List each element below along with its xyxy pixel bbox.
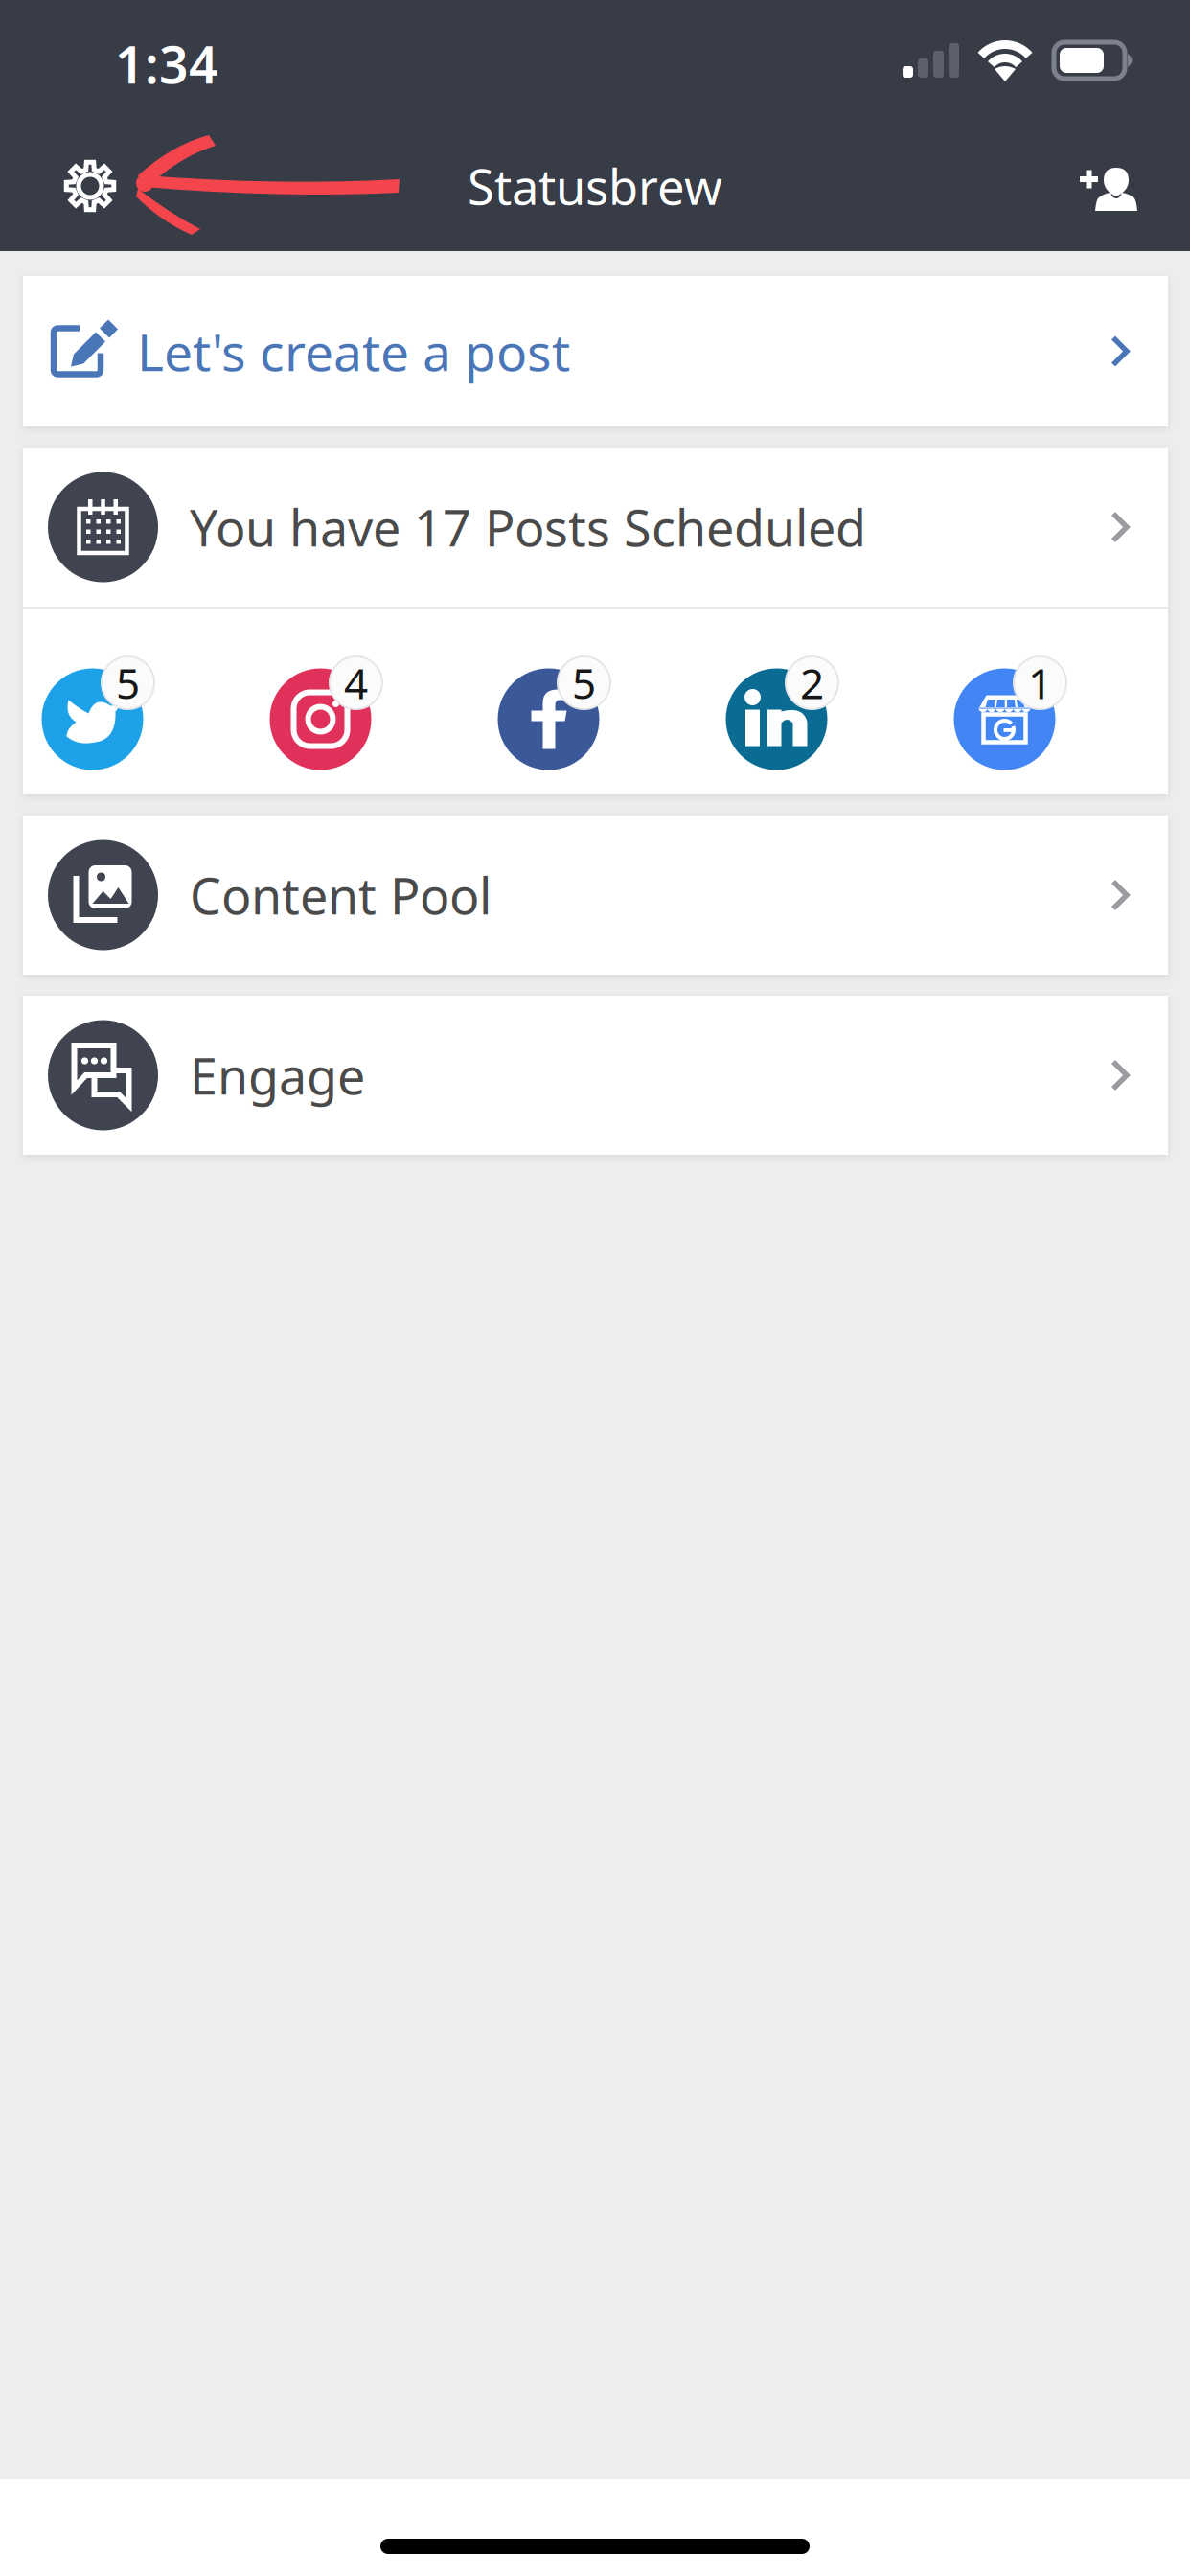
button[interactable]: 1 posts — [954, 632, 1063, 770]
staticText: Content Pool — [190, 862, 492, 928]
staticText: You have 17 Posts Scheduled — [190, 494, 866, 560]
button[interactable]: 2 posts — [726, 632, 835, 770]
button[interactable]: Engage — [23, 996, 1168, 1155]
staticText: Statusbrew — [468, 154, 722, 218]
staticText: 5 — [116, 655, 140, 711]
button[interactable]: Let's create a post — [23, 276, 1168, 426]
staticText: 2 — [800, 655, 824, 711]
staticText: 5 — [572, 655, 596, 711]
button[interactable]: Settings — [31, 121, 149, 251]
staticText: 1 — [1028, 655, 1052, 711]
button[interactable]: Content Pool — [23, 816, 1168, 975]
button[interactable]: 5 posts — [498, 632, 607, 770]
staticText: 4 — [344, 655, 368, 711]
button[interactable]: Add account — [1050, 121, 1169, 251]
staticText: 1:34 — [115, 30, 218, 98]
button[interactable]: 4 posts — [270, 632, 379, 770]
button[interactable]: You have 17 Posts Scheduled — [23, 448, 1168, 607]
staticText: Let's create a post — [137, 317, 570, 385]
staticText: Engage — [190, 1042, 365, 1108]
button[interactable]: 5 posts — [42, 632, 151, 770]
